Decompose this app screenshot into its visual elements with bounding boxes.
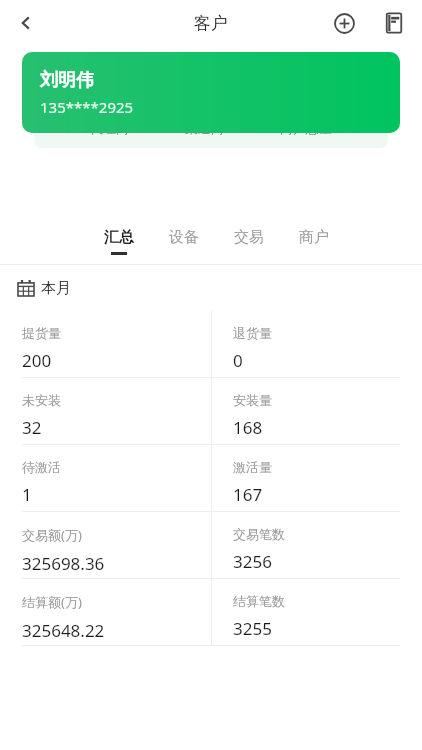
button[interactable]: 本月: [18, 265, 422, 311]
staticText: 325698.36: [22, 552, 105, 575]
staticText: 代理商: [90, 120, 129, 136]
staticText: 1: [22, 483, 32, 506]
button[interactable]: 交易额(万): [0, 512, 211, 579]
staticText: 客户: [194, 13, 228, 34]
button[interactable]: 激活量: [211, 445, 422, 512]
staticText: 设备: [169, 228, 199, 247]
staticText: 提货量: [22, 325, 61, 341]
button[interactable]: 安装量: [211, 378, 422, 445]
button[interactable]: 交易: [216, 218, 281, 264]
button[interactable]: Add: [324, 3, 364, 43]
staticText: 325648.22: [22, 619, 105, 642]
button[interactable]: 设备: [151, 218, 216, 264]
staticText: 刘明伟: [40, 69, 94, 92]
staticText: 交易: [234, 228, 264, 247]
staticText: 168: [233, 416, 263, 439]
staticText: 结算额(万): [22, 593, 82, 611]
staticText: 汇总: [104, 228, 134, 247]
staticText: 0: [233, 349, 243, 372]
staticText: 商户总量: [280, 120, 332, 136]
staticText: 200: [22, 349, 52, 372]
staticText: 3255: [233, 617, 272, 640]
button[interactable]: 结算笔数: [211, 579, 422, 646]
staticText: 交易额(万): [22, 526, 82, 544]
staticText: 未安装: [22, 392, 61, 408]
button[interactable]: 刘明伟: [22, 52, 400, 133]
button[interactable]: 汇总: [86, 218, 151, 264]
button[interactable]: Back: [6, 3, 46, 43]
button[interactable]: 结算额(万): [0, 579, 211, 646]
button[interactable]: 商户: [281, 218, 346, 264]
button[interactable]: 退货量: [211, 311, 422, 378]
staticText: 激活量: [233, 459, 272, 475]
staticText: 结算笔数: [233, 593, 285, 609]
button[interactable]: 提货量: [0, 311, 211, 378]
staticText: 本月: [41, 279, 71, 298]
staticText: 3256: [233, 550, 272, 573]
staticText: 167: [233, 483, 263, 506]
button[interactable]: 待激活: [0, 445, 211, 512]
staticText: 待激活: [22, 459, 61, 475]
staticText: 商户: [299, 228, 329, 247]
staticText: 渠道商: [185, 120, 224, 136]
staticText: 交易笔数: [233, 526, 285, 542]
staticText: 135****2925: [40, 97, 134, 117]
staticText: 退货量: [233, 325, 272, 341]
staticText: 32: [22, 416, 42, 439]
button[interactable]: Report: [374, 3, 414, 43]
staticText: 安装量: [233, 392, 272, 408]
button[interactable]: 交易笔数: [211, 512, 422, 579]
staticText: 26: [99, 90, 120, 115]
button[interactable]: 未安装: [0, 378, 211, 445]
